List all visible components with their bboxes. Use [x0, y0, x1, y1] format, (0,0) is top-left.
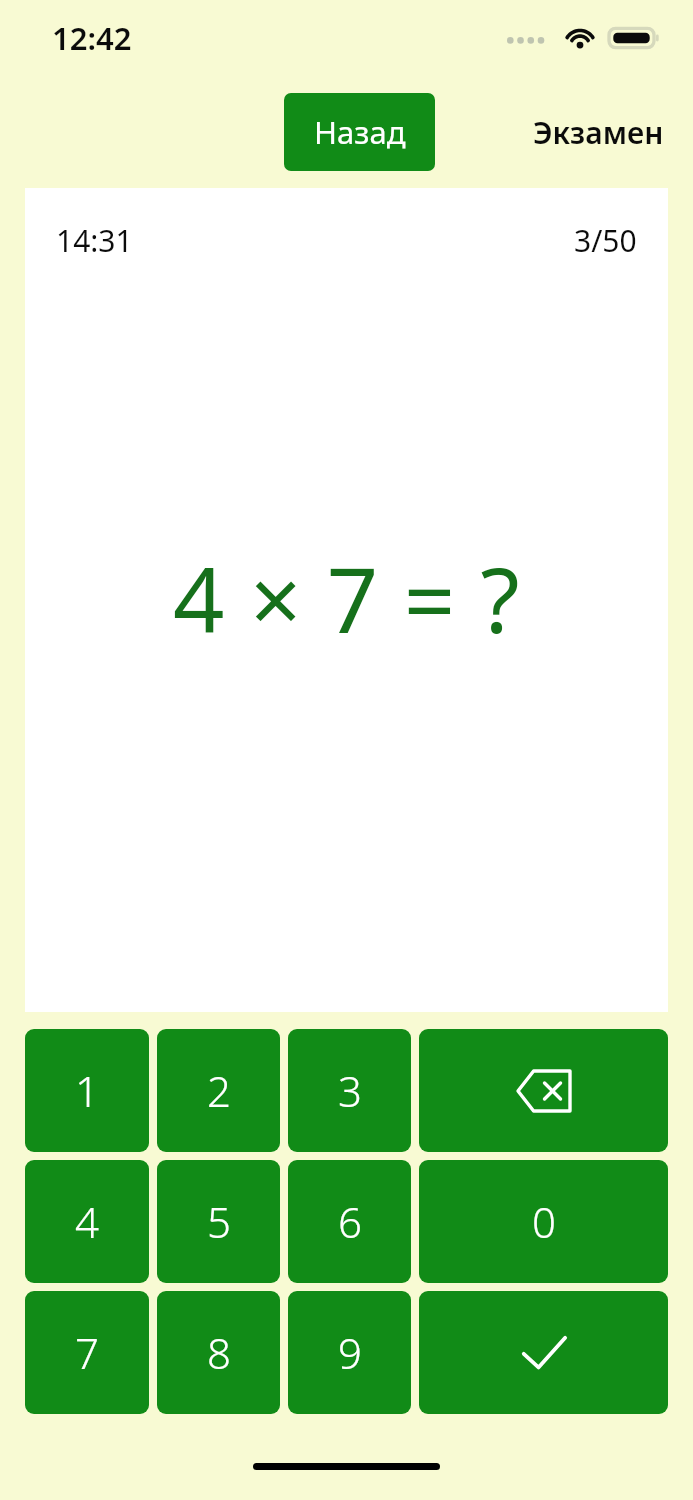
button[interactable]: 7 [25, 1291, 149, 1414]
staticText: 3/50 [574, 220, 637, 261]
button[interactable]: 2 [157, 1029, 280, 1152]
staticText: 12:42 [52, 17, 132, 59]
button[interactable]: Назад [284, 93, 435, 171]
staticText: 7 [75, 1324, 99, 1381]
staticText: 6 [338, 1193, 362, 1250]
button[interactable]: Backspace [419, 1029, 668, 1152]
staticText: 8 [207, 1324, 231, 1381]
staticText: 5 [207, 1193, 231, 1250]
staticText: Назад [314, 111, 406, 153]
button[interactable]: 5 [157, 1160, 280, 1283]
staticText: 4 [75, 1193, 99, 1250]
staticText: 2 [207, 1062, 231, 1119]
button[interactable]: 6 [288, 1160, 411, 1283]
button[interactable]: Submit answer [419, 1291, 668, 1414]
staticText: 1 [75, 1062, 99, 1119]
button[interactable]: 4 [25, 1160, 149, 1283]
button[interactable]: 3 [288, 1029, 411, 1152]
button[interactable]: 8 [157, 1291, 280, 1414]
staticText: 4 × 7 = ? [173, 537, 521, 660]
staticText: 0 [532, 1193, 556, 1250]
button[interactable]: 9 [288, 1291, 411, 1414]
button[interactable]: 0 [419, 1160, 668, 1283]
staticText: 14:31 [56, 220, 133, 261]
staticText: 9 [338, 1324, 362, 1381]
staticText: Экзамен [533, 112, 664, 153]
staticText: 3 [338, 1062, 362, 1119]
button[interactable]: 1 [25, 1029, 149, 1152]
